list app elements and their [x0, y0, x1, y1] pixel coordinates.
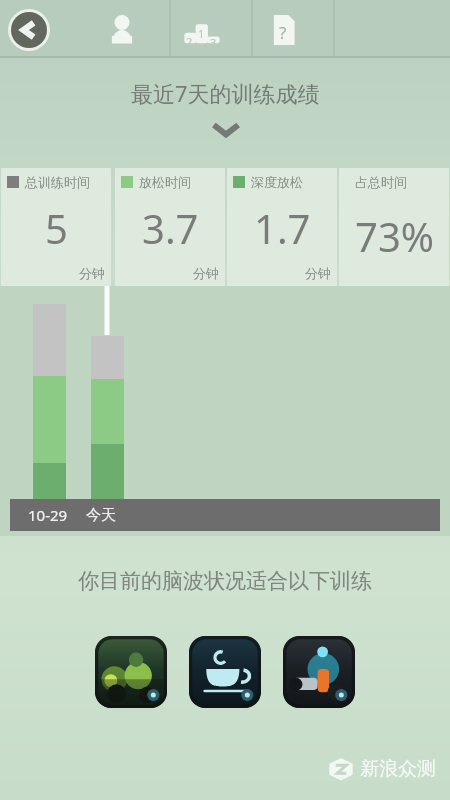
- button[interactable]: Profile: [100, 8, 144, 52]
- staticText: 新浪众测: [360, 757, 436, 781]
- staticText: 放松时间: [139, 174, 191, 190]
- staticText: 分钟: [233, 265, 331, 281]
- staticText: 73%: [355, 209, 434, 263]
- staticText: 分钟: [121, 265, 219, 281]
- staticText: 10-29: [28, 505, 68, 525]
- staticText: 2: [186, 34, 193, 49]
- staticText: 1: [198, 26, 205, 41]
- button[interactable]: Training app 2: [189, 636, 261, 708]
- staticText: ?: [279, 21, 287, 44]
- button[interactable]: Help: [262, 8, 306, 52]
- staticText: 占总时间: [355, 174, 407, 190]
- button[interactable]: 深度放松: [227, 168, 337, 286]
- button[interactable]: 放松时间: [115, 168, 225, 286]
- staticText: 3: [210, 35, 217, 50]
- staticText: 分钟: [7, 265, 105, 281]
- staticText: 总训练时间: [25, 174, 90, 190]
- button[interactable]: 占总时间: [339, 168, 449, 286]
- staticText: 深度放松: [251, 174, 303, 190]
- staticText: 今天: [86, 506, 116, 525]
- button[interactable]: Ranking: [180, 8, 224, 52]
- button[interactable]: Training app 3: [283, 636, 355, 708]
- staticText: 5: [45, 201, 68, 255]
- staticText: 1.7: [254, 201, 311, 255]
- staticText: 3.7: [142, 201, 199, 255]
- staticText: 最近7天的训练成绩: [131, 78, 320, 108]
- button[interactable]: Training app 1: [95, 636, 167, 708]
- button[interactable]: 最近7天的训练成绩: [0, 58, 450, 168]
- button[interactable]: 总训练时间: [1, 168, 111, 286]
- button[interactable]: Back: [8, 9, 50, 51]
- staticText: 你目前的脑波状况适合以下训练: [78, 568, 372, 594]
